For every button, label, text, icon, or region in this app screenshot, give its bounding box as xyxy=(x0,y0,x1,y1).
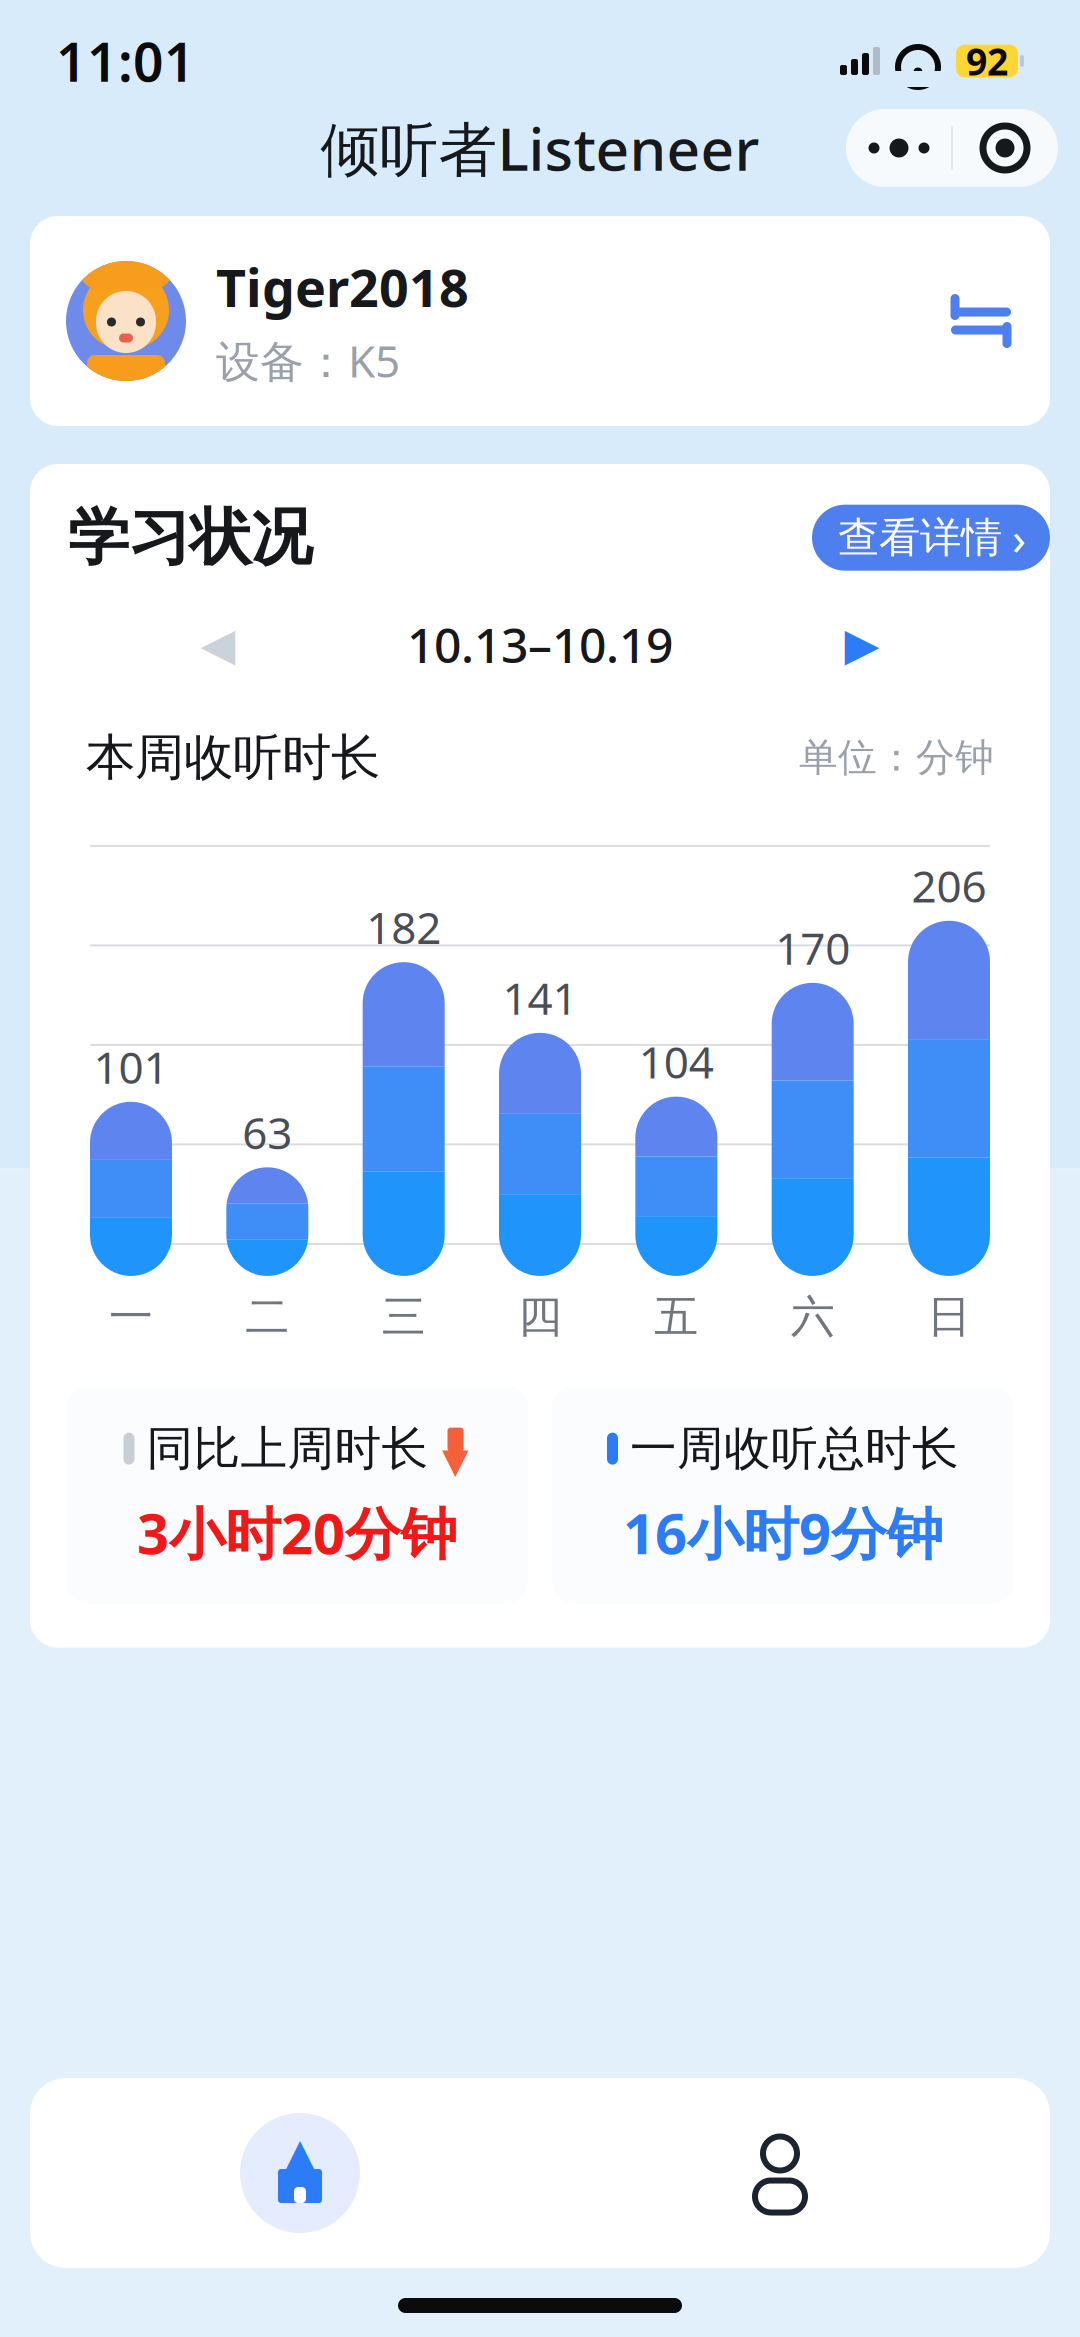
staticText: 五 xyxy=(654,1290,698,1344)
staticText: 10.13–10.19 xyxy=(407,612,673,676)
staticText: ▶ xyxy=(844,619,879,670)
button[interactable]: Tiger2018 xyxy=(30,216,1050,426)
staticText: 倾听者Listeneer xyxy=(320,109,759,187)
staticText: 单位：分钟 xyxy=(799,734,994,781)
staticText: ▼ xyxy=(442,1441,469,1480)
button[interactable]: Home xyxy=(60,2078,540,2268)
staticText: 二 xyxy=(245,1290,289,1344)
staticText: 日 xyxy=(927,1290,971,1344)
staticText: ▲ xyxy=(280,2127,319,2185)
staticText: 本周收听时长 xyxy=(86,727,380,788)
button[interactable]: Next week xyxy=(822,609,902,679)
button[interactable]: Previous week xyxy=(178,609,258,679)
staticText: 学习状况 xyxy=(68,500,312,575)
button[interactable]: 查看详情 xyxy=(812,505,1050,571)
staticText: 设备：K5 xyxy=(216,331,400,390)
staticText: 63 xyxy=(242,1103,292,1161)
staticText: 3小时20分钟 xyxy=(137,1495,457,1570)
staticText: Tiger2018 xyxy=(216,252,469,321)
staticText: 11:01 xyxy=(56,26,195,96)
staticText: › xyxy=(1012,508,1026,568)
staticText: 182 xyxy=(366,898,441,956)
staticText: 四 xyxy=(518,1290,562,1344)
staticText: 206 xyxy=(911,856,986,915)
button[interactable]: Profile xyxy=(540,2078,1020,2268)
button[interactable]: More xyxy=(847,109,951,187)
staticText: 查看详情 xyxy=(838,512,1002,563)
staticText: 三 xyxy=(382,1290,426,1344)
staticText: 六 xyxy=(791,1290,835,1344)
staticText: 141 xyxy=(502,968,577,1027)
staticText: 101 xyxy=(93,1037,168,1096)
button[interactable]: Close xyxy=(953,109,1057,187)
staticText: 同比上周时长 xyxy=(146,1420,428,1477)
staticText: 92 xyxy=(966,36,1008,86)
staticText: 170 xyxy=(775,918,850,977)
staticText: 16小时9分钟 xyxy=(623,1495,943,1570)
staticText: ◀ xyxy=(200,619,235,670)
staticText: 104 xyxy=(639,1032,714,1091)
staticText: 一 xyxy=(109,1290,153,1344)
staticText: 一周收听总时长 xyxy=(630,1420,959,1477)
